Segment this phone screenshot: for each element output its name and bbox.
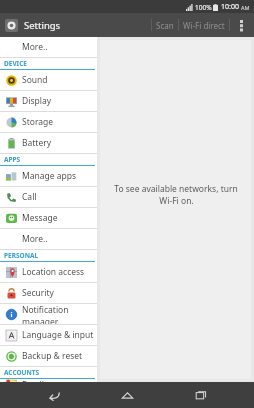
staticText: DEVICE: [4, 59, 27, 68]
button[interactable]: Scan: [152, 16, 178, 35]
staticText: Message: [22, 212, 58, 224]
staticText: Scan: [156, 20, 174, 31]
button[interactable]: Wi-Fi direct: [179, 16, 229, 35]
staticText: Battery: [22, 137, 52, 149]
button[interactable]: Sound: [0, 70, 97, 90]
staticText: More..: [22, 233, 48, 245]
button[interactable]: Backup & reset: [0, 346, 97, 366]
staticText: Backup & reset: [22, 350, 83, 362]
staticText: Security: [22, 287, 54, 299]
button[interactable]: Message: [0, 208, 97, 228]
button[interactable]: Language & input: [0, 325, 97, 345]
staticText: More..: [22, 41, 48, 53]
staticText: Display: [22, 95, 51, 107]
button[interactable]: Location access: [0, 262, 97, 282]
staticText: Manage apps: [22, 170, 77, 182]
button[interactable]: Display: [0, 91, 97, 111]
staticText: Notification manager: [22, 304, 97, 324]
button[interactable]: Battery: [0, 133, 97, 153]
staticText: Sound: [22, 74, 48, 86]
button[interactable]: Recent apps: [181, 382, 221, 408]
button[interactable]: Settings app icon: [5, 19, 18, 32]
button[interactable]: Call: [0, 187, 97, 207]
button[interactable]: More..: [0, 229, 97, 249]
staticText: 10:00: [221, 2, 239, 12]
staticText: Email: [22, 379, 44, 382]
button[interactable]: Home: [107, 382, 147, 408]
staticText: PERSONAL: [4, 251, 39, 260]
staticText: Storage: [22, 116, 54, 128]
staticText: AM: [241, 4, 250, 11]
button[interactable]: Back: [34, 382, 74, 408]
button[interactable]: Storage: [0, 112, 97, 132]
staticText: Location access: [22, 266, 85, 278]
button[interactable]: Manage apps: [0, 166, 97, 186]
button[interactable]: Security: [0, 283, 97, 303]
staticText: ACCOUNTS: [4, 368, 40, 377]
staticText: Language & input: [22, 329, 94, 341]
staticText: Wi-Fi direct: [183, 20, 225, 31]
button[interactable]: Email: [0, 379, 97, 382]
button[interactable]: Notification manager: [0, 304, 97, 324]
staticText: Settings: [24, 19, 61, 32]
staticText: Call: [22, 191, 37, 203]
button[interactable]: More options: [233, 17, 249, 33]
staticText: APPS: [4, 155, 21, 164]
staticText: To see available networks, turn: [114, 183, 238, 195]
button[interactable]: More..: [0, 37, 97, 57]
staticText: 100%: [195, 3, 212, 12]
staticText: Wi-Fi on.: [159, 195, 194, 207]
